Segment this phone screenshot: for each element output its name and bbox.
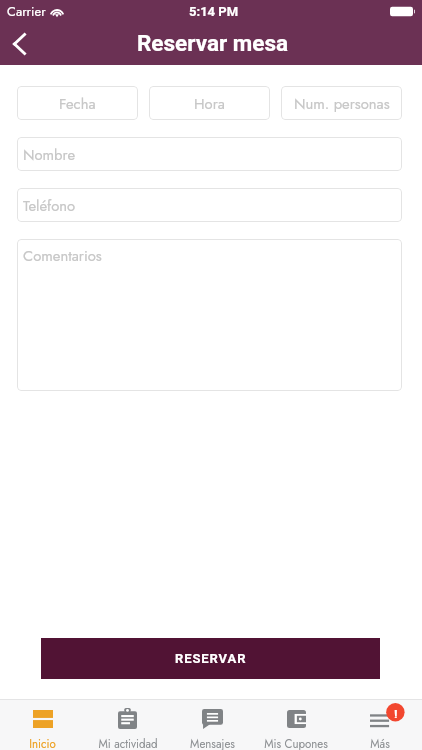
button[interactable]: Inicio: [0, 700, 85, 750]
staticText: 5:14 PM: [189, 4, 239, 19]
staticText: Más: [370, 736, 390, 750]
staticText: Mi actividad: [98, 736, 158, 750]
staticText: Nombre: [23, 144, 75, 165]
staticText: Carrier: [7, 2, 46, 21]
staticText: Reservar mesa: [137, 30, 289, 56]
button[interactable]: RESERVAR: [41, 638, 380, 679]
button[interactable]: Mis Cupones: [254, 700, 338, 750]
staticText: Mis Cupones: [264, 736, 328, 750]
staticText: !: [394, 707, 398, 718]
staticText: RESERVAR: [175, 651, 247, 666]
button[interactable]: !: [338, 700, 422, 750]
staticText: Num. personas: [294, 93, 390, 114]
staticText: Inicio: [29, 736, 56, 750]
button[interactable]: Num. personas: [281, 86, 402, 120]
button[interactable]: Comentarios: [17, 239, 402, 391]
button[interactable]: Mi actividad: [85, 700, 170, 750]
button[interactable]: Mensajes: [170, 700, 254, 750]
staticText: Fecha: [59, 93, 96, 114]
staticText: Hora: [194, 93, 225, 114]
button[interactable]: Nombre: [17, 137, 402, 171]
staticText: Mensajes: [190, 736, 235, 750]
button[interactable]: Fecha: [17, 86, 138, 120]
staticText: Teléfono: [23, 195, 76, 216]
button[interactable]: Back: [0, 22, 38, 65]
staticText: Comentarios: [23, 245, 102, 266]
button[interactable]: Teléfono: [17, 188, 402, 222]
button[interactable]: Hora: [149, 86, 270, 120]
